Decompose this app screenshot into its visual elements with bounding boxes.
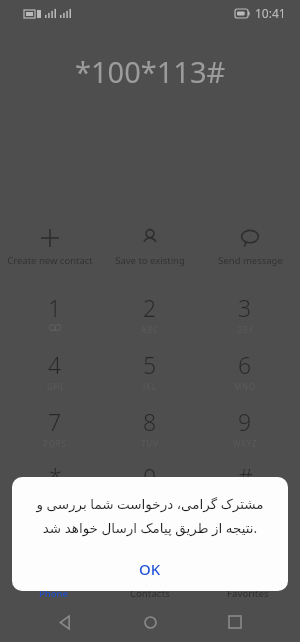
button[interactable]: OK — [12, 553, 288, 585]
staticText: Send message — [218, 254, 283, 267]
staticText: 5 — [143, 349, 157, 380]
staticText: نتیجه از طریق پیامک ارسال خواهد شد. — [22, 519, 278, 537]
button[interactable]: 6 — [205, 349, 285, 392]
staticText: ABC — [141, 324, 159, 335]
button[interactable]: Save to existing — [100, 226, 200, 269]
staticText: 2 — [143, 292, 157, 323]
staticText: Save to existing — [115, 254, 185, 267]
button[interactable]: 5 — [110, 349, 190, 392]
button[interactable]: 0 — [110, 461, 190, 487]
staticText: WXYZ — [233, 438, 258, 449]
staticText: 0 — [143, 461, 157, 487]
staticText: GHI — [47, 381, 64, 392]
staticText: 6 — [238, 349, 252, 380]
button[interactable]: Phone — [8, 587, 98, 600]
staticText: 8 — [143, 406, 157, 437]
button[interactable]: Create new contact — [0, 226, 100, 269]
staticText: *100*113# — [75, 52, 226, 91]
staticText: Contacts — [130, 587, 170, 600]
staticText: مشترک گرامی، درخواست شما بررسی و — [22, 495, 278, 513]
staticText: 4 — [48, 349, 62, 380]
staticText: 10:41 — [255, 5, 286, 21]
button[interactable]: # — [205, 461, 285, 487]
staticText: 1 — [48, 292, 62, 323]
staticText: DEF — [237, 324, 254, 335]
staticText: 7 — [48, 406, 62, 437]
staticText: 3 — [238, 292, 252, 323]
button[interactable]: Back — [45, 602, 85, 642]
button[interactable]: 7 — [15, 406, 95, 449]
staticText: Favorites — [227, 587, 269, 600]
button[interactable]: Contacts — [105, 587, 195, 600]
button[interactable]: 9 — [205, 406, 285, 449]
staticText: # — [238, 461, 253, 487]
button[interactable]: Send message — [200, 226, 300, 269]
button[interactable]: Recents — [215, 602, 255, 642]
staticText: OK — [139, 559, 161, 579]
button[interactable]: 3 — [205, 292, 285, 335]
staticText: 9 — [238, 406, 252, 437]
staticText: Create new contact — [7, 254, 93, 267]
staticText: Phone — [39, 587, 68, 600]
button[interactable]: * — [15, 461, 95, 487]
staticText: * — [49, 461, 62, 487]
staticText: PQRS — [43, 438, 67, 449]
button[interactable]: Home — [130, 602, 170, 642]
button[interactable]: Favorites — [203, 587, 293, 600]
button[interactable]: 8 — [110, 406, 190, 449]
button[interactable]: 2 — [110, 292, 190, 335]
button[interactable]: 4 — [15, 349, 95, 392]
staticText: MNO — [234, 381, 256, 392]
